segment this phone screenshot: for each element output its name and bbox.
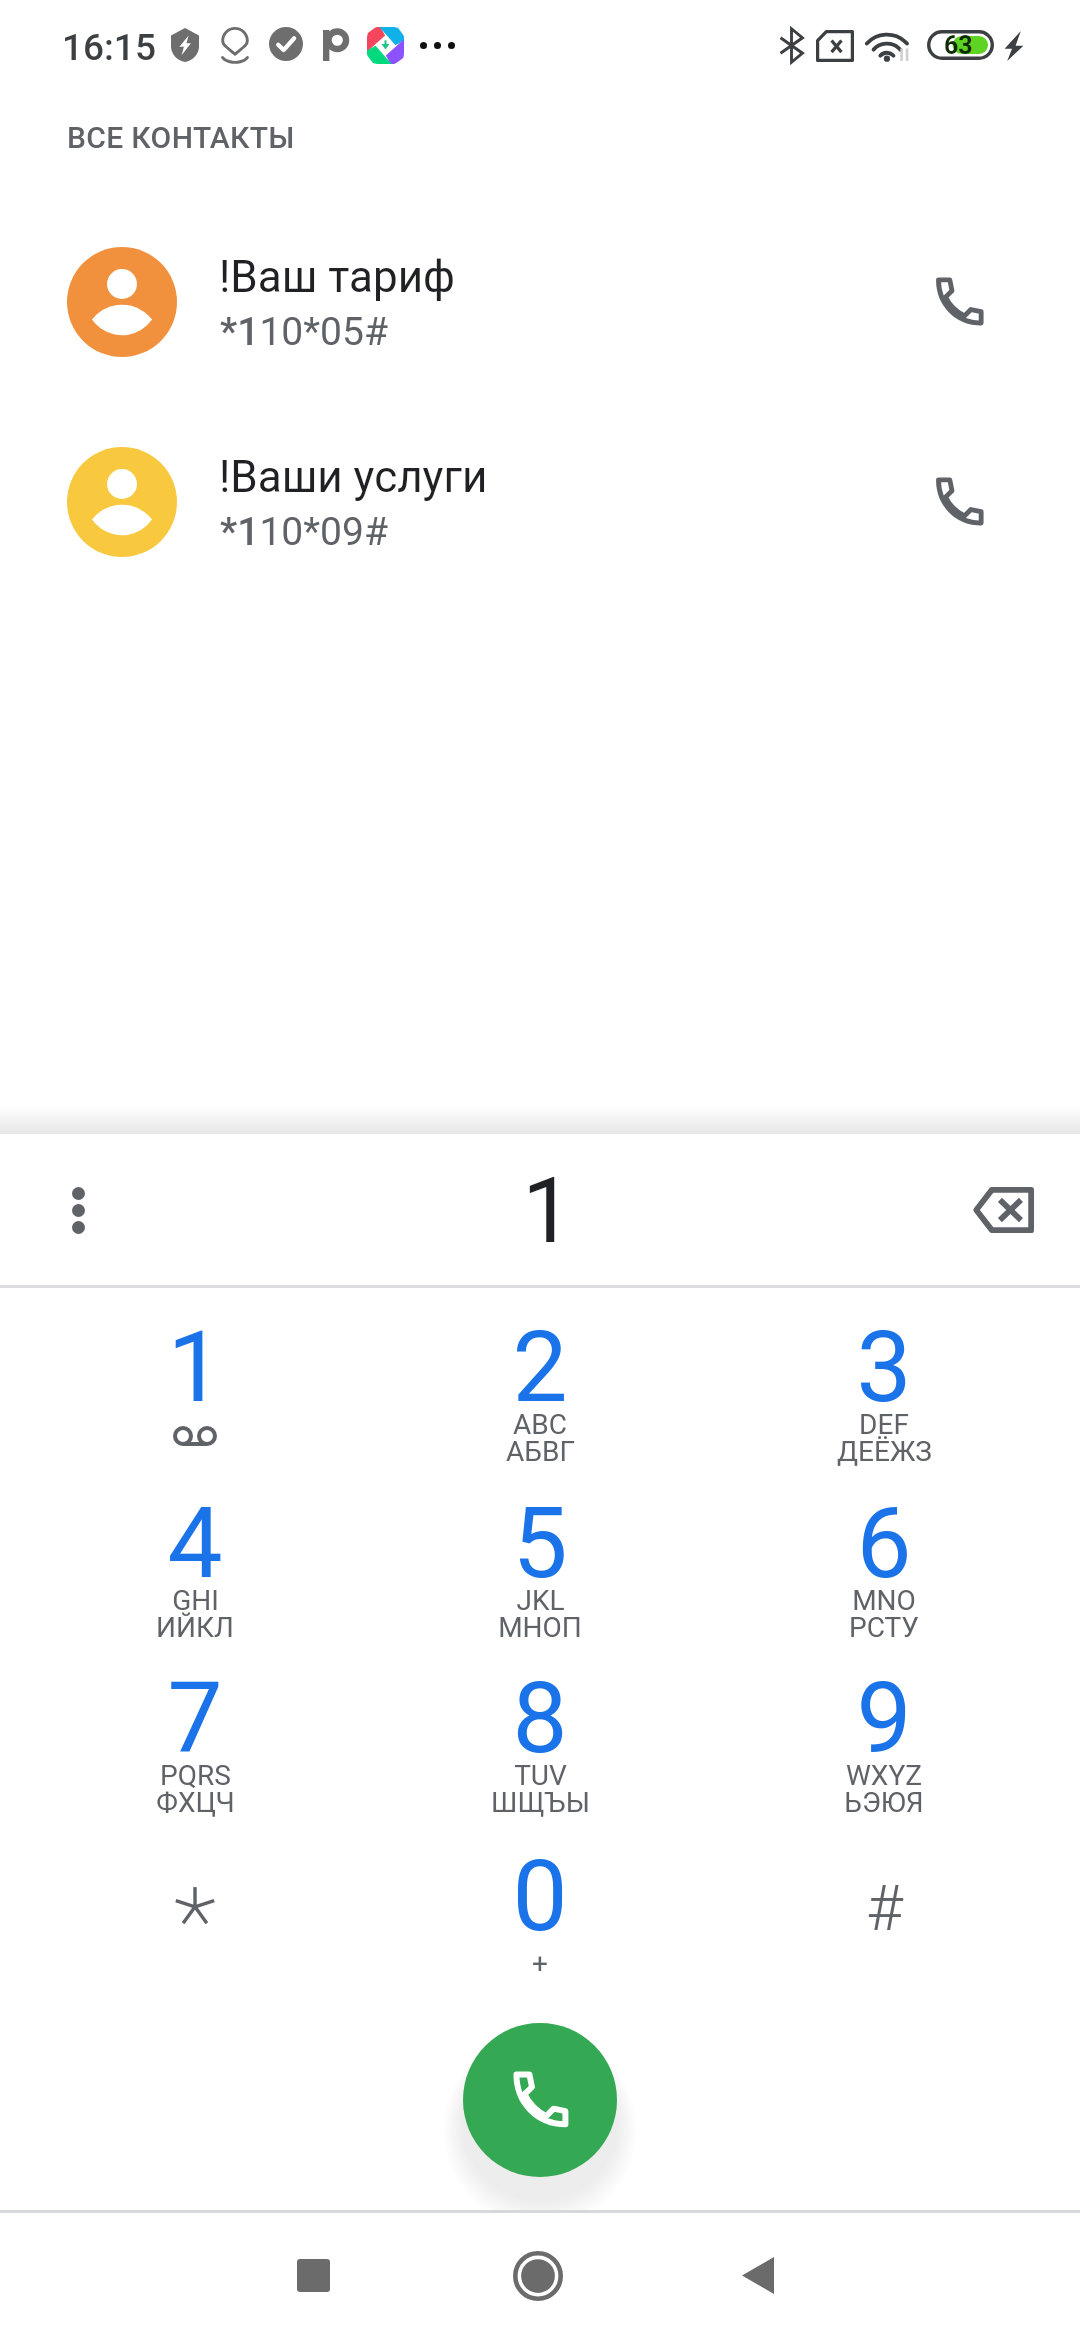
button[interactable] [368, 1671, 712, 1847]
staticText: !Ваши услуги [219, 451, 488, 503]
staticText: TUV [514, 1759, 567, 1792]
staticText: ЬЭЮЯ [844, 1786, 924, 1819]
staticText: МНОП [498, 1611, 582, 1644]
staticText: 2 [512, 1310, 568, 1425]
staticText: ABC [513, 1408, 567, 1441]
staticText: 1 [167, 1310, 223, 1425]
staticText: 4 [167, 1486, 223, 1601]
staticText: ВСЕ КОНТАКТЫ [67, 120, 295, 155]
button[interactable] [712, 1849, 1056, 2025]
staticText: + [532, 1947, 548, 1980]
button[interactable]: Call [899, 442, 1019, 562]
button[interactable]: Call [899, 242, 1019, 362]
staticText: DEF [859, 1408, 909, 1441]
staticText: 0 [512, 1839, 568, 1954]
staticText: *110*05# [220, 309, 388, 355]
button[interactable] [712, 1671, 1056, 1847]
button[interactable] [23, 1671, 367, 1847]
button[interactable] [23, 1496, 367, 1672]
staticText: WXYZ [846, 1759, 922, 1792]
staticText: !Ваш тариф [219, 251, 455, 303]
staticText: # [866, 1872, 903, 1946]
staticText: GHI [172, 1584, 219, 1617]
staticText: MNO [852, 1584, 916, 1617]
button[interactable]: Call [463, 2023, 617, 2177]
staticText: ШЩЪЫ [491, 1786, 590, 1819]
button[interactable] [368, 1496, 712, 1672]
staticText: ДЕЁЖЗ [837, 1435, 932, 1468]
button[interactable] [368, 1849, 712, 2025]
staticText: 6 [856, 1486, 912, 1601]
button[interactable] [23, 1320, 367, 1496]
staticText: ФХЦЧ [156, 1786, 235, 1819]
button[interactable]: Back [718, 2235, 798, 2315]
staticText: 16:15 [62, 26, 156, 69]
button[interactable]: More options [30, 1162, 126, 1258]
staticText: 5 [512, 1486, 568, 1601]
staticText: ИЙКЛ [156, 1611, 234, 1644]
button[interactable]: Home [498, 2236, 578, 2316]
staticText: 63 [944, 31, 973, 60]
button[interactable]: Backspace [948, 1155, 1058, 1265]
staticText: 7 [167, 1661, 223, 1776]
button[interactable] [23, 1849, 367, 2025]
staticText: 1 [522, 1159, 573, 1264]
staticText: *110*09# [220, 509, 388, 555]
button[interactable]: Recent apps [273, 2235, 353, 2315]
staticText: 9 [856, 1661, 912, 1776]
staticText: 3 [856, 1310, 912, 1425]
button[interactable] [0, 402, 1080, 602]
staticText: 8 [512, 1661, 568, 1776]
staticText: АБВГ [506, 1435, 575, 1468]
button[interactable] [712, 1496, 1056, 1672]
staticText: РСТУ [849, 1611, 919, 1644]
staticText: PQRS [160, 1759, 231, 1792]
staticText: JKL [516, 1584, 565, 1617]
button[interactable] [0, 202, 1080, 402]
button[interactable] [368, 1320, 712, 1496]
button[interactable] [712, 1320, 1056, 1496]
